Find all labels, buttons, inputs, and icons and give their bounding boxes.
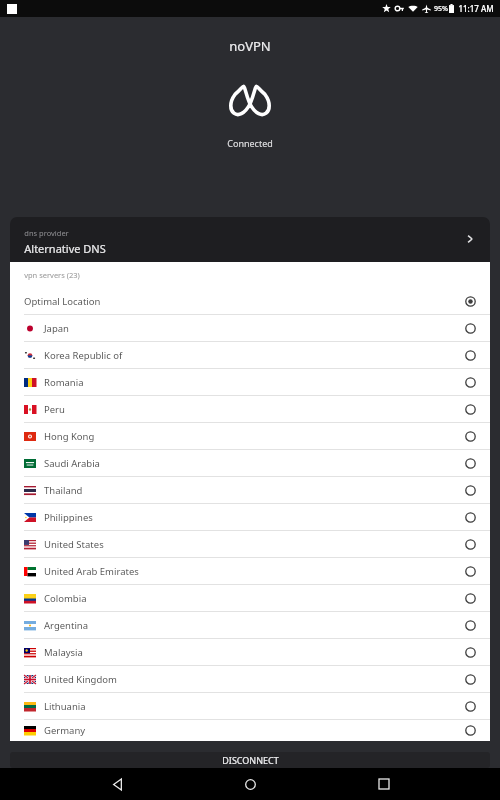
- button[interactable]: Philippines: [10, 504, 490, 531]
- staticText: Hong Kong: [44, 430, 465, 443]
- staticText: Saudi Arabia: [44, 457, 465, 470]
- button[interactable]: DISCONNECT: [10, 752, 490, 768]
- button[interactable]: Back: [100, 768, 134, 800]
- button[interactable]: Japan: [10, 315, 490, 342]
- button[interactable]: United Arab Emirates: [10, 558, 490, 585]
- staticText: dns provider: [24, 228, 69, 238]
- button[interactable]: Malaysia: [10, 639, 490, 666]
- staticText: United Arab Emirates: [44, 565, 465, 578]
- button[interactable]: Home: [233, 768, 267, 800]
- staticText: Connected: [227, 137, 273, 149]
- staticText: Philippines: [44, 511, 465, 524]
- staticText: Korea Republic of: [44, 349, 465, 362]
- staticText: 95%: [434, 4, 448, 14]
- staticText: United States: [44, 538, 465, 551]
- staticText: United Kingdom: [44, 673, 465, 686]
- staticText: vpn servers (23): [24, 270, 80, 280]
- button[interactable]: Hong Kong: [10, 423, 490, 450]
- button[interactable]: Optimal Location: [10, 288, 490, 315]
- button[interactable]: Germany: [10, 720, 490, 741]
- button[interactable]: Korea Republic of: [10, 342, 490, 369]
- button[interactable]: Colombia: [10, 585, 490, 612]
- button[interactable]: Saudi Arabia: [10, 450, 490, 477]
- staticText: Colombia: [44, 592, 465, 605]
- staticText: Japan: [44, 322, 465, 335]
- button[interactable]: Peru: [10, 396, 490, 423]
- button[interactable]: dns provider: [10, 217, 490, 277]
- staticText: Optimal Location: [24, 295, 465, 308]
- staticText: Germany: [44, 724, 465, 737]
- staticText: noVPN: [229, 37, 271, 55]
- staticText: Romania: [44, 376, 465, 389]
- staticText: DISCONNECT: [222, 754, 279, 766]
- button[interactable]: Romania: [10, 369, 490, 396]
- staticText: 11:17 AM: [458, 3, 494, 14]
- staticText: Alternative DNS: [24, 241, 106, 256]
- button[interactable]: Argentina: [10, 612, 490, 639]
- staticText: Lithuania: [44, 700, 465, 713]
- staticText: Malaysia: [44, 646, 465, 659]
- button[interactable]: Recent apps: [367, 768, 401, 800]
- button[interactable]: United States: [10, 531, 490, 558]
- staticText: Argentina: [44, 619, 465, 632]
- staticText: Peru: [44, 403, 465, 416]
- staticText: Thailand: [44, 484, 465, 497]
- button[interactable]: United Kingdom: [10, 666, 490, 693]
- button[interactable]: Lithuania: [10, 693, 490, 720]
- button[interactable]: Thailand: [10, 477, 490, 504]
